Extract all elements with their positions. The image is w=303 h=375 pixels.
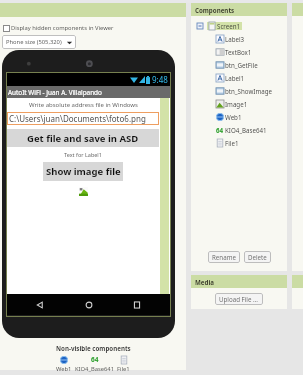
button[interactable]: Recent apps: [131, 299, 143, 311]
staticText: C:\Users\juan\Documents\foto6.png: [9, 113, 146, 124]
button[interactable]: Upload File ...: [215, 293, 263, 305]
staticText: Media: [195, 278, 214, 286]
button[interactable]: Show image file: [43, 162, 123, 181]
button[interactable]: File1: [117, 355, 130, 373]
staticText: Web1: [56, 365, 72, 373]
staticText: Display hidden components in Viewer: [11, 24, 114, 32]
staticText: 64: [216, 126, 224, 134]
staticText: Show image file: [46, 165, 121, 178]
staticText: Write absolute address file in Windows: [29, 101, 138, 109]
staticText: File1: [117, 365, 130, 373]
staticText: Get file and save in ASD: [27, 132, 139, 145]
staticText: Web1: [225, 113, 242, 121]
staticText: Delete: [248, 253, 267, 261]
staticText: Rename: [212, 253, 236, 261]
button[interactable]: Get file and save in ASD: [7, 129, 159, 147]
staticText: Phone size (505,320): [6, 38, 62, 46]
button[interactable]: Delete: [244, 251, 271, 263]
staticText: Text for Label1: [64, 151, 102, 158]
staticText: TextBox1: [225, 48, 252, 56]
staticText: Image1: [225, 100, 248, 108]
staticText: Label3: [225, 35, 245, 43]
staticText: KIO4_Base641: [75, 365, 114, 373]
button[interactable]: Display hidden components in Viewer: [3, 24, 114, 32]
staticText: AutoIt WiFi - Juan A. Villalpando: [8, 88, 102, 97]
button[interactable]: Phone size (505,320): [2, 35, 76, 49]
button[interactable]: 64: [75, 355, 114, 373]
button[interactable]: 64: [191, 123, 287, 136]
button[interactable]: btn_GetFile: [191, 58, 287, 71]
button[interactable]: File1: [191, 136, 287, 149]
button[interactable]: Home: [83, 299, 95, 311]
button[interactable]: Label3: [191, 32, 287, 45]
staticText: 9:48: [152, 74, 168, 85]
button[interactable]: Screen1: [191, 19, 287, 32]
button[interactable]: TextBox1: [191, 45, 287, 58]
staticText: Screen1: [217, 22, 241, 30]
staticText: btn_ShowImage: [225, 87, 272, 95]
button[interactable]: Label1: [191, 71, 287, 84]
staticText: btn_GetFile: [225, 61, 258, 69]
staticText: Components: [195, 6, 235, 14]
button[interactable]: Web1: [56, 355, 72, 373]
button[interactable]: Back: [34, 299, 46, 311]
staticText: File1: [225, 139, 239, 147]
button[interactable]: Image1: [191, 97, 287, 110]
staticText: Non-visible components: [56, 344, 131, 352]
button[interactable]: Web1: [191, 110, 287, 123]
staticText: 64: [91, 355, 99, 364]
staticText: KIO4_Base641: [225, 126, 267, 134]
button[interactable]: Rename: [208, 251, 240, 263]
button[interactable]: btn_ShowImage: [191, 84, 287, 97]
staticText: Upload File ...: [219, 295, 259, 303]
staticText: Label1: [225, 74, 245, 82]
